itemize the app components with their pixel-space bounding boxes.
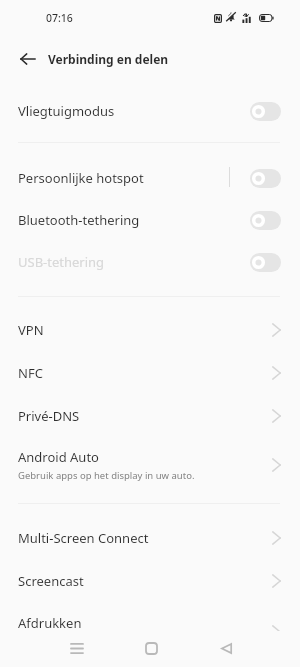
button[interactable]: Toggle: [250, 211, 281, 230]
button[interactable]: Privé-DNS: [0, 394, 300, 437]
staticText: Vliegtuigmodus: [18, 102, 115, 120]
staticText: USB-tethering: [18, 253, 105, 271]
staticText: Privé-DNS: [18, 407, 80, 425]
button[interactable]: Home: [131, 630, 172, 666]
button[interactable]: Toggle: [250, 102, 281, 121]
button[interactable]: Screencast: [0, 559, 300, 602]
button[interactable]: Toggle: [250, 253, 281, 272]
staticText: Afdrukken: [18, 614, 82, 632]
staticText: Bluetooth-tethering: [18, 211, 140, 229]
staticText: VPN: [18, 321, 44, 339]
staticText: Multi-Screen Connect: [18, 529, 149, 547]
button[interactable]: NFC: [0, 351, 300, 394]
staticText: NFC: [18, 364, 43, 382]
button[interactable]: USB-tethering: [0, 241, 300, 283]
staticText: Android Auto: [18, 448, 99, 466]
button[interactable]: Persoonlijke hotspot: [0, 157, 300, 199]
staticText: Gebruik apps op het display in uw auto.: [18, 469, 195, 482]
staticText: Persoonlijke hotspot: [18, 169, 144, 187]
button[interactable]: Recent apps: [56, 630, 97, 666]
button[interactable]: Vliegtuigmodus: [0, 90, 300, 132]
button[interactable]: Toggle: [250, 169, 281, 188]
button[interactable]: VPN: [0, 308, 300, 351]
button[interactable]: Android Auto: [0, 443, 300, 487]
staticText: Screencast: [18, 572, 84, 590]
button[interactable]: Bluetooth-tethering: [0, 199, 300, 241]
button[interactable]: Back: [206, 630, 247, 666]
button[interactable]: Back: [8, 42, 48, 76]
staticText: Verbinding en delen: [48, 51, 169, 67]
button[interactable]: Afdrukken: [0, 601, 300, 644]
button[interactable]: Multi-Screen Connect: [0, 516, 300, 559]
staticText: 07:16: [46, 11, 73, 25]
